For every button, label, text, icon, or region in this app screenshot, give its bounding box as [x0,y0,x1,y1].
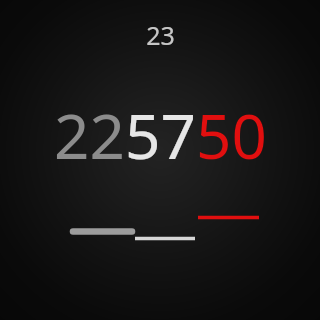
staticText: 23 [146,18,175,52]
button[interactable]: Watch face [0,0,320,320]
staticText: 50 [196,93,267,177]
staticText: 57 [125,93,196,177]
staticText: 22 [54,93,125,177]
